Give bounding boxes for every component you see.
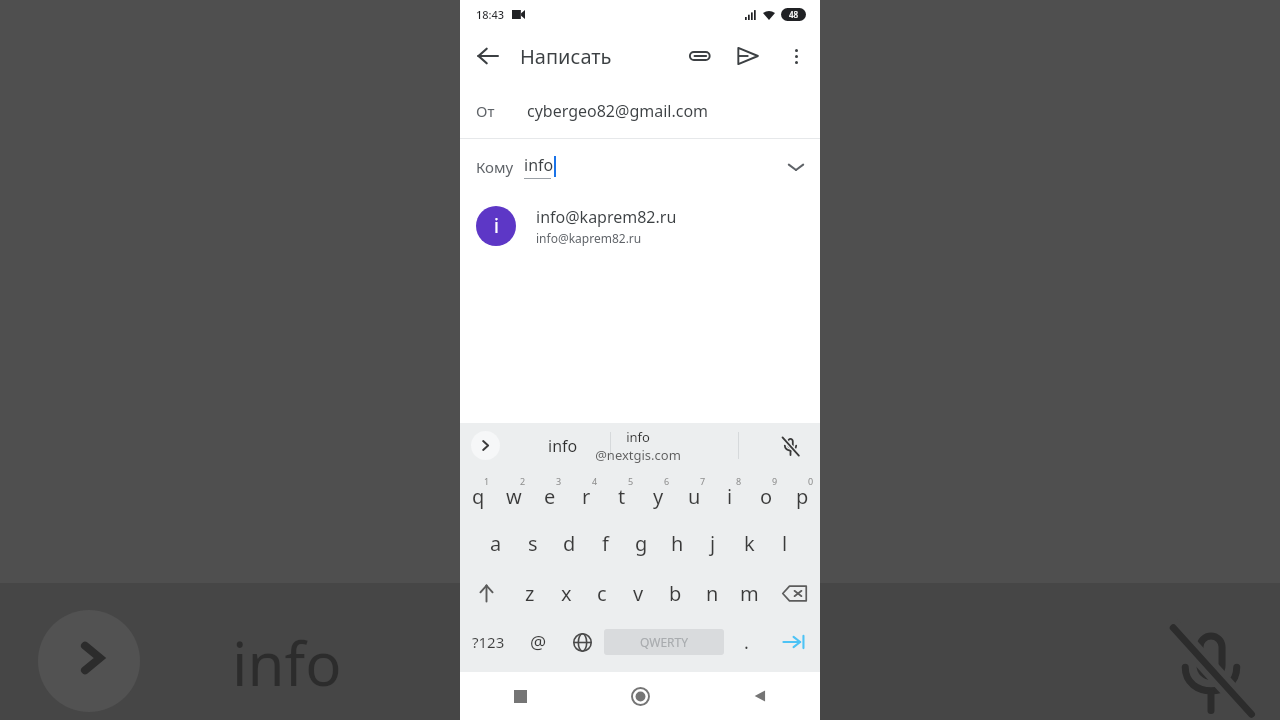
staticText: e [544,483,556,510]
staticText: 7 [700,475,706,487]
button[interactable]: Attach file [676,32,724,80]
staticText: l [782,530,788,557]
button[interactable]: u [676,468,712,518]
button[interactable]: v [620,568,657,618]
button[interactable]: Recent apps [460,672,580,720]
staticText: @nextgis.com [595,446,681,464]
staticText: info@kaprem82.ru [536,230,642,246]
staticText: ?123 [472,632,505,652]
staticText: b [669,580,682,607]
staticText: r [582,483,591,510]
button[interactable]: k [731,518,767,568]
button[interactable]: . [724,618,768,666]
staticText: 48 [789,9,799,20]
staticText: p [796,483,809,510]
button[interactable]: i [460,194,820,258]
button[interactable]: z [512,568,548,618]
button[interactable]: ?123 [460,618,516,666]
button[interactable]: Send [724,32,772,80]
button[interactable]: От [460,84,820,138]
button[interactable]: s [514,518,551,568]
button[interactable]: t [604,468,640,518]
staticText: . [744,630,749,655]
staticText: 6 [664,475,670,487]
button[interactable]: f [587,518,623,568]
button[interactable]: a [477,518,514,568]
button[interactable]: More suggestions [471,431,500,460]
button[interactable]: n [694,568,731,618]
staticText: 2 [520,475,526,487]
button[interactable]: h [659,518,695,568]
staticText: t [618,483,626,510]
staticText: i [727,483,733,510]
button[interactable]: y [640,468,676,518]
staticText: f [602,530,609,557]
staticText: info [548,435,578,457]
button[interactable]: w [496,468,532,518]
button[interactable]: e [532,468,568,518]
staticText: 3 [556,475,562,487]
staticText: info [524,154,554,176]
button[interactable]: Voice input disabled [772,428,808,464]
button[interactable]: Next field [768,618,820,666]
button[interactable]: i [712,468,748,518]
staticText: 5 [628,475,634,487]
button[interactable]: Back [700,672,820,720]
button[interactable]: More options [772,32,820,80]
staticText: w [506,483,522,510]
staticText: n [706,580,719,607]
button[interactable]: q [460,468,496,518]
staticText: info [626,428,650,446]
staticText: cybergeo82@gmail.com [527,100,709,122]
staticText: s [528,530,538,557]
button[interactable]: j [695,518,731,568]
staticText: d [563,530,576,557]
button[interactable]: p [784,468,820,518]
button[interactable]: QWERTY [604,629,724,655]
button[interactable]: @ [516,618,560,666]
staticText: a [490,530,502,557]
button[interactable]: Expand recipient fields [772,143,820,191]
staticText: 9 [772,475,778,487]
button[interactable]: Change keyboard language [560,618,604,666]
button[interactable]: o [748,468,784,518]
staticText: info@kaprem82.ru [536,206,677,228]
staticText: 4 [592,475,598,487]
staticText: Кому [476,157,514,177]
staticText: k [744,530,755,557]
button[interactable]: g [623,518,659,568]
button[interactable]: info [576,428,700,464]
staticText: y [653,483,664,510]
button[interactable]: Shift [460,568,512,618]
button[interactable]: x [548,568,584,618]
staticText: От [476,101,495,121]
button[interactable]: info [516,423,610,468]
staticText: 0 [808,475,814,487]
button[interactable]: c [584,568,620,618]
staticText: j [710,530,716,557]
staticText: v [633,580,644,607]
button[interactable]: b [657,568,694,618]
staticText: x [561,580,572,607]
button[interactable]: l [767,518,803,568]
staticText: @ [530,630,547,655]
staticText: u [688,483,701,510]
staticText: QWERTY [640,634,689,650]
staticText: i [494,213,499,239]
staticText: info [232,622,342,704]
button[interactable]: Back [460,28,516,84]
staticText: 18:43 [476,7,505,22]
button[interactable]: m [731,568,768,618]
button[interactable]: Home [580,672,700,720]
button[interactable]: d [551,518,587,568]
staticText: Написать [520,43,612,70]
staticText: z [525,580,535,607]
staticText: o [760,483,773,510]
staticText: 8 [736,475,742,487]
staticText: c [597,580,607,607]
staticText: m [740,580,759,607]
button[interactable]: r [568,468,604,518]
staticText: g [635,530,648,557]
staticText: h [671,530,684,557]
button[interactable]: Backspace [768,568,820,618]
